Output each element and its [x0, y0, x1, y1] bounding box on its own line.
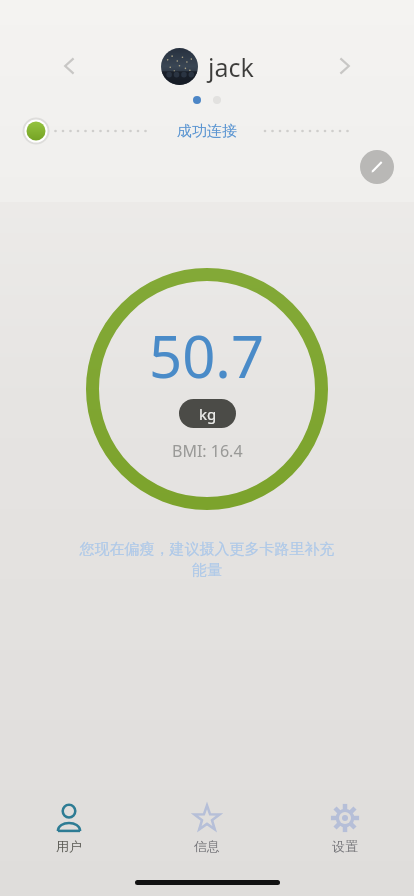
button[interactable]: 设置	[276, 797, 414, 854]
button[interactable]: 用户	[0, 797, 138, 854]
staticText: BMI: 16.4	[172, 440, 243, 462]
button[interactable]: Edit	[360, 150, 394, 184]
staticText: 您现在偏瘦，建议摄入更多卡路里补充能量	[77, 540, 337, 580]
button[interactable]: jack	[161, 48, 254, 85]
staticText: jack	[208, 50, 254, 84]
staticText: 设置	[332, 838, 358, 854]
staticText: kg	[199, 404, 217, 424]
staticText: 成功连接	[177, 122, 237, 141]
button[interactable]: 信息	[138, 797, 276, 854]
button[interactable]: Next user	[322, 44, 366, 88]
button[interactable]: kg	[179, 399, 236, 428]
staticText: 信息	[194, 838, 220, 854]
button[interactable]: Previous user	[48, 44, 92, 88]
staticText: 50.7	[149, 316, 265, 395]
staticText: 用户	[56, 838, 82, 854]
